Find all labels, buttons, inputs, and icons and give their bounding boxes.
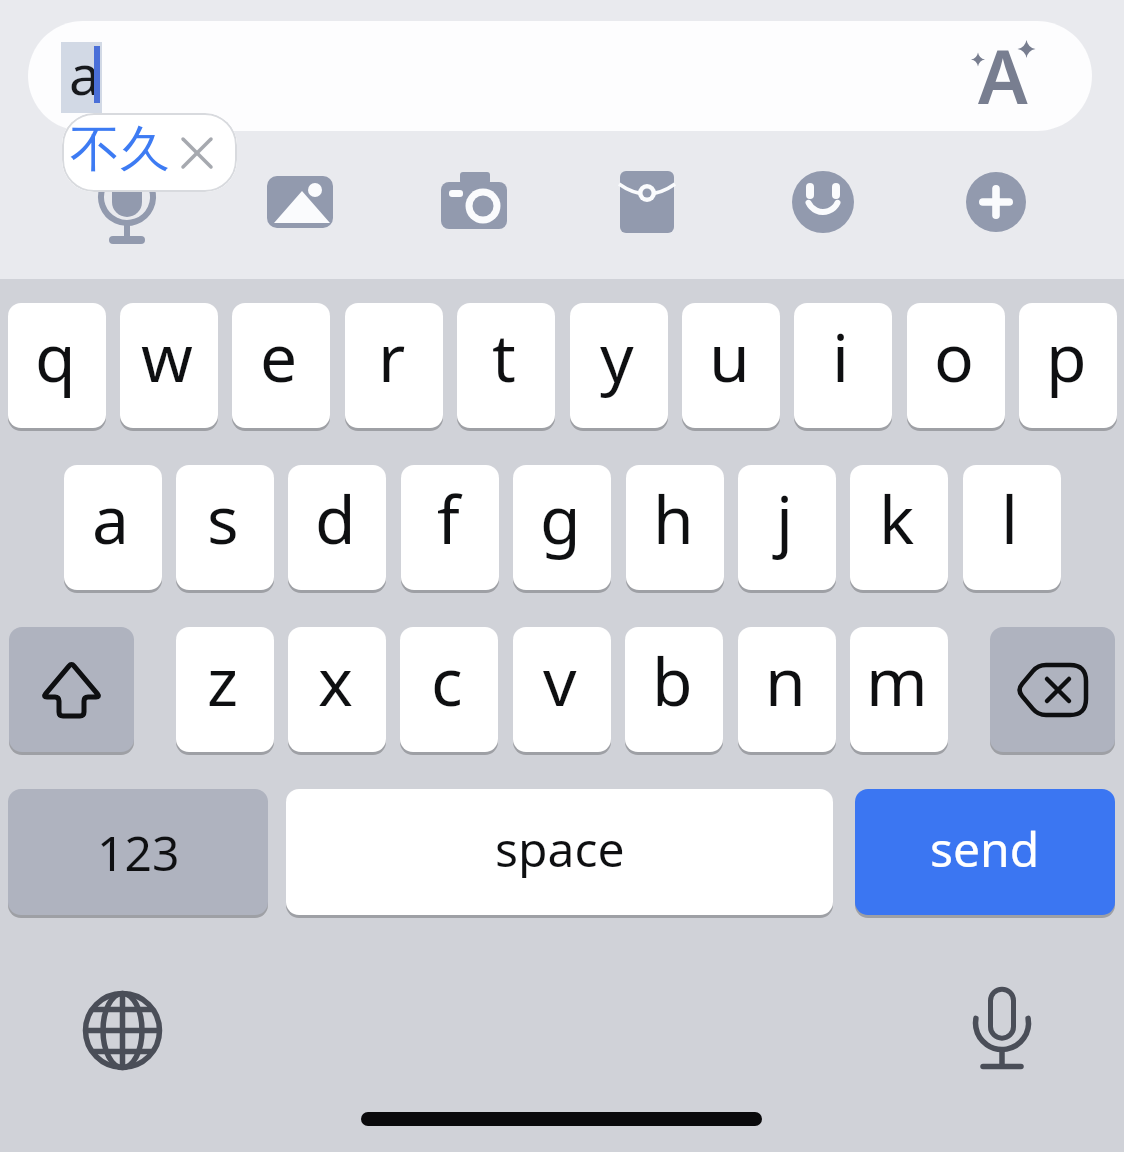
staticText: n: [765, 635, 806, 725]
button[interactable]: m: [850, 627, 948, 752]
button[interactable]: a: [64, 465, 162, 590]
button[interactable]: space: [286, 789, 833, 915]
button[interactable]: w: [120, 303, 218, 428]
button[interactable]: z: [176, 627, 274, 752]
button[interactable]: [255, 157, 345, 247]
staticText: e: [260, 311, 298, 401]
button[interactable]: [70, 978, 175, 1083]
staticText: y: [600, 311, 634, 401]
staticText: b: [652, 635, 693, 725]
staticText: o: [934, 311, 974, 401]
button[interactable]: g: [513, 465, 611, 590]
button[interactable]: o: [907, 303, 1005, 428]
button[interactable]: d: [288, 465, 386, 590]
staticText: m: [866, 635, 928, 725]
button[interactable]: x: [288, 627, 386, 752]
button[interactable]: r: [345, 303, 443, 428]
button[interactable]: [955, 28, 1050, 123]
button[interactable]: send: [855, 789, 1115, 915]
staticText: u: [709, 311, 750, 401]
staticText: k: [879, 473, 915, 563]
button[interactable]: p: [1019, 303, 1117, 428]
staticText: A: [978, 25, 1028, 126]
button[interactable]: [990, 627, 1115, 752]
button[interactable]: n: [738, 627, 836, 752]
staticText: c: [431, 635, 463, 725]
button[interactable]: c: [400, 627, 498, 752]
button[interactable]: j: [738, 465, 836, 590]
button[interactable]: i: [794, 303, 892, 428]
button[interactable]: y: [570, 303, 668, 428]
staticText: d: [315, 473, 356, 563]
staticText: v: [543, 635, 577, 725]
staticText: a: [92, 473, 130, 563]
staticText: g: [540, 473, 581, 563]
staticText: p: [1046, 311, 1087, 401]
button[interactable]: 123: [8, 789, 268, 915]
button[interactable]: l: [963, 465, 1061, 590]
button[interactable]: h: [626, 465, 724, 590]
staticText: x: [318, 635, 353, 725]
button[interactable]: [950, 978, 1055, 1083]
staticText: w: [141, 311, 193, 401]
staticText: send: [930, 816, 1040, 881]
button[interactable]: b: [625, 627, 723, 752]
button[interactable]: [9, 627, 134, 752]
button[interactable]: [602, 157, 692, 247]
staticText: f: [437, 473, 460, 563]
button[interactable]: q: [8, 303, 106, 428]
staticText: i: [832, 311, 850, 401]
button[interactable]: [429, 157, 519, 247]
staticText: t: [492, 311, 516, 401]
staticText: space: [495, 816, 625, 881]
staticText: 123: [97, 820, 180, 885]
staticText: h: [653, 473, 694, 563]
staticText: q: [35, 311, 76, 401]
staticText: 不久: [70, 118, 170, 181]
button[interactable]: t: [457, 303, 555, 428]
button[interactable]: s: [176, 465, 274, 590]
staticText: r: [378, 311, 406, 401]
button[interactable]: [82, 157, 172, 247]
button[interactable]: [28, 21, 1092, 131]
button[interactable]: u: [682, 303, 780, 428]
button[interactable]: f: [401, 465, 499, 590]
button[interactable]: [62, 113, 237, 192]
staticText: a: [69, 36, 100, 111]
button[interactable]: k: [850, 465, 948, 590]
button[interactable]: e: [232, 303, 330, 428]
staticText: l: [1001, 473, 1019, 563]
button[interactable]: v: [513, 627, 611, 752]
staticText: z: [207, 635, 239, 725]
staticText: s: [207, 473, 239, 563]
button[interactable]: [951, 157, 1041, 247]
button[interactable]: [778, 157, 868, 247]
staticText: j: [776, 473, 794, 563]
